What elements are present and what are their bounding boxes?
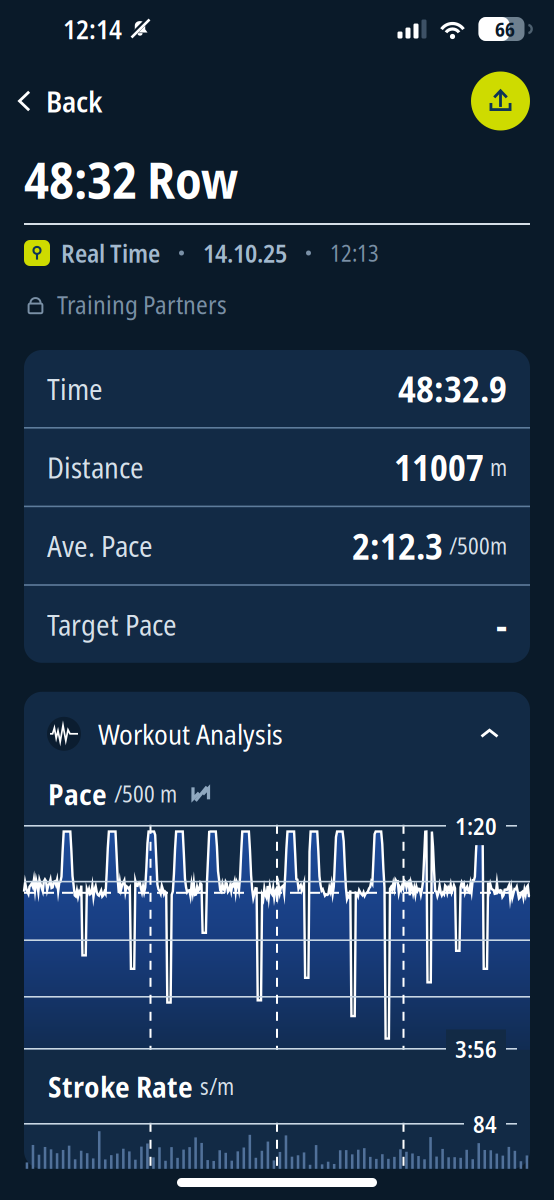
staticText: 12:13 [330, 238, 379, 268]
staticText: - [496, 600, 507, 649]
button[interactable]: Back [0, 69, 116, 133]
staticText: Distance [47, 447, 144, 487]
staticText: Time [47, 368, 103, 408]
staticText: 84 [473, 1107, 497, 1140]
staticText: Training Partners [57, 287, 227, 322]
staticText: Back [46, 81, 102, 121]
staticText: s/m [200, 1071, 234, 1102]
staticText: /500m [449, 530, 507, 561]
staticText: 11007 [394, 443, 484, 492]
button[interactable]: Share workout [471, 71, 530, 130]
staticText: 2:12.3 [352, 521, 443, 570]
staticText: 3:56 [455, 1032, 497, 1065]
staticText: m [490, 452, 507, 483]
staticText: /500 m [114, 778, 177, 809]
button[interactable]: Workout Analysis [24, 705, 530, 763]
staticText: Stroke Rate [48, 1066, 193, 1106]
staticText: 66 [495, 15, 515, 43]
staticText: Ave. Pace [47, 526, 153, 566]
staticText: Target Pace [47, 604, 177, 644]
staticText: Real Time [61, 236, 160, 270]
staticText: Workout Analysis [98, 715, 283, 753]
staticText: 12:14 [63, 11, 122, 47]
staticText: 48:32.9 [398, 364, 507, 413]
staticText: 1:20 [455, 809, 497, 842]
staticText: 14.10.25 [203, 236, 287, 270]
button[interactable]: Training Partners [0, 281, 554, 328]
staticText: 48:32 Row [24, 144, 238, 213]
staticText: Pace [48, 774, 107, 814]
